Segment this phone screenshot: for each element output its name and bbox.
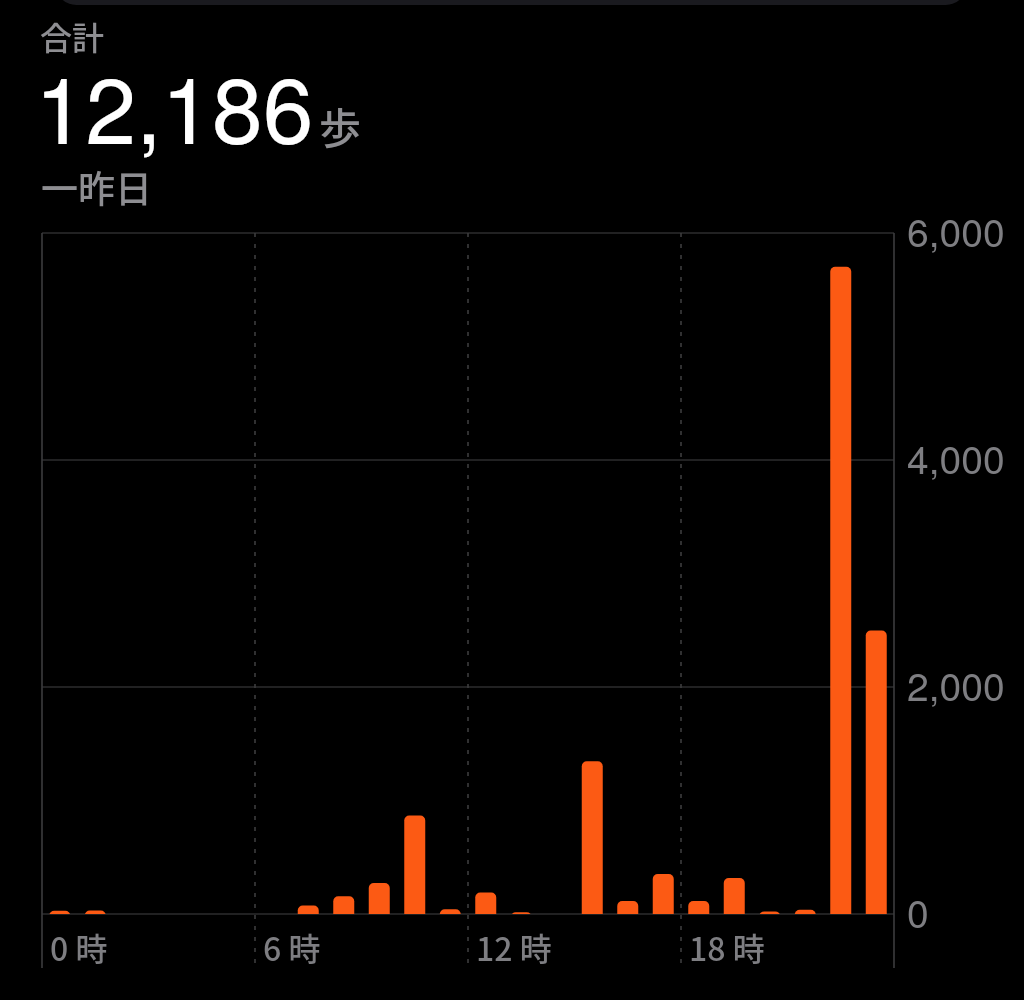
staticText: 6 時 <box>263 924 321 970</box>
staticText: 12,186 <box>35 40 314 170</box>
staticText: 2,000 <box>907 656 1005 712</box>
staticText: 18 時 <box>689 924 765 970</box>
staticText: 12 時 <box>476 924 552 970</box>
staticText: 4,000 <box>907 429 1005 485</box>
staticText: 0 時 <box>50 924 108 970</box>
button[interactable]: 合計 <box>0 0 1024 218</box>
button[interactable]: Hourly step count chart <box>20 218 1004 988</box>
staticText: 合計 <box>40 13 105 59</box>
staticText: 6,000 <box>907 202 1005 258</box>
staticText: 歩 <box>319 95 362 156</box>
staticText: 一昨日 <box>41 160 152 214</box>
staticText: 0 <box>907 883 929 939</box>
